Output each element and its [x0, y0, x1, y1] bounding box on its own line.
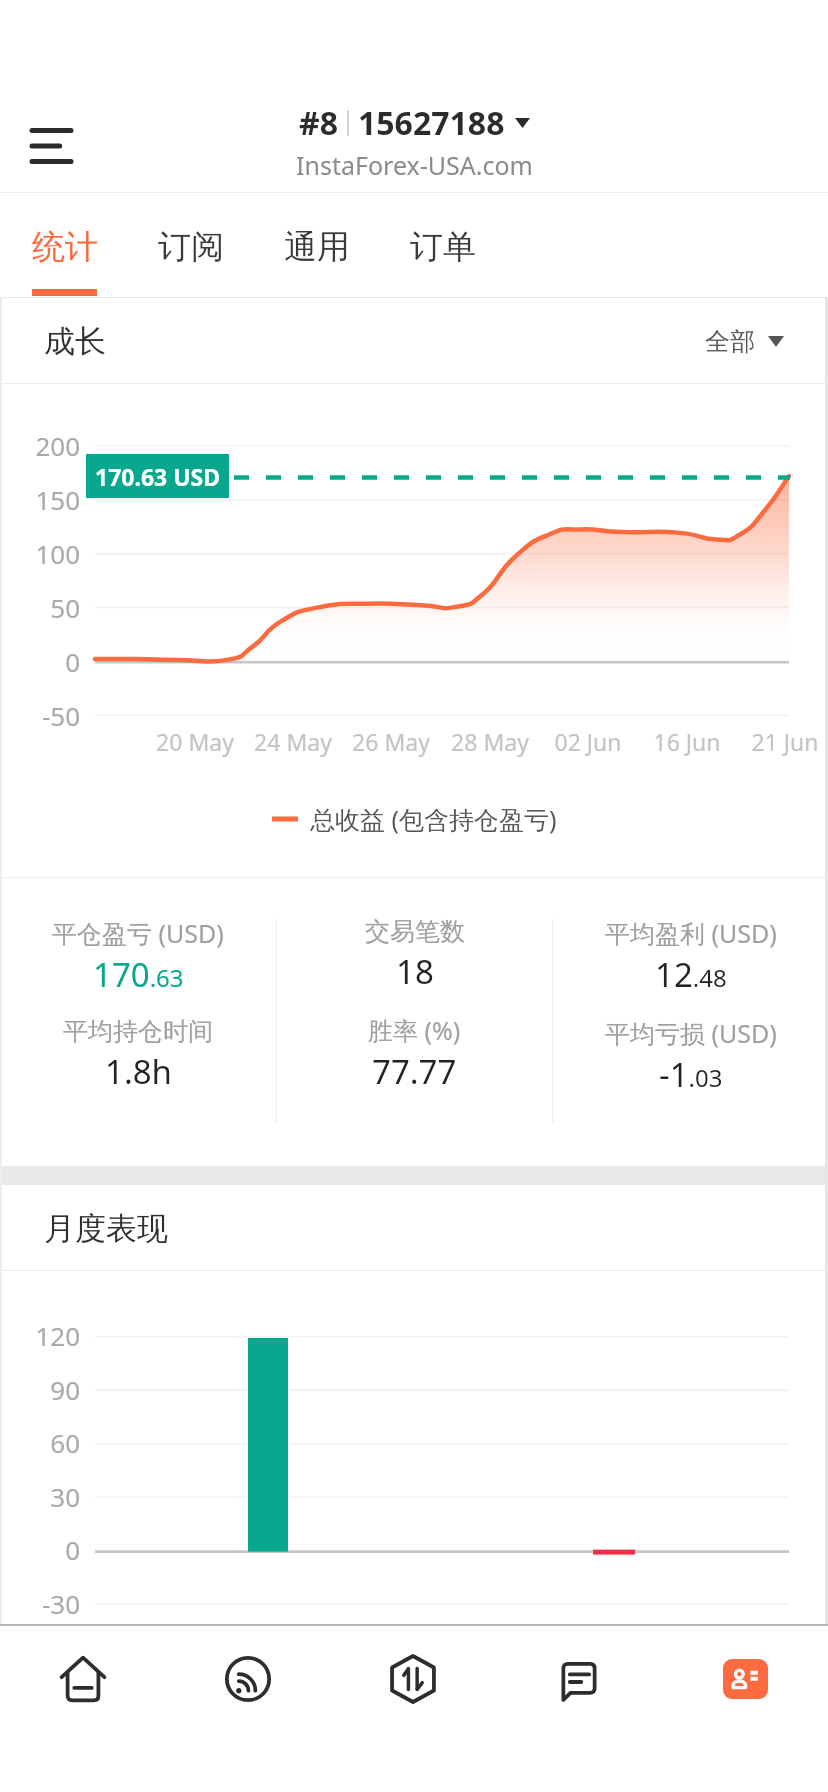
staticText: 统计 — [32, 226, 98, 268]
button[interactable]: Trade — [330, 1626, 496, 1792]
staticText: 0 — [0, 644, 80, 679]
staticText: 月度表现 — [44, 1209, 168, 1248]
staticText: 77.77 — [372, 1049, 457, 1094]
button[interactable]: 订单 — [378, 193, 504, 297]
staticText: 26 May — [321, 726, 461, 757]
staticText: 订阅 — [158, 226, 224, 268]
staticText: 02 Jun — [518, 726, 658, 757]
button[interactable]: 统计 — [0, 193, 126, 297]
staticText: 通用 — [284, 226, 350, 268]
staticText: 总收益 (包含持仓盈亏) — [310, 802, 557, 836]
staticText: 平均盈利 (USD) — [605, 916, 777, 950]
button[interactable]: Profile — [662, 1626, 828, 1792]
staticText: -50 — [0, 698, 80, 733]
staticText: 胜率 (%) — [368, 1013, 461, 1047]
staticText: 平仓盈亏 (USD) — [52, 916, 224, 950]
staticText: 0 — [0, 1532, 80, 1567]
staticText: 12.48 — [655, 952, 727, 997]
staticText: 100 — [0, 536, 80, 571]
staticText: 24 May — [223, 726, 363, 757]
staticText: 成长 — [44, 322, 106, 361]
staticText: -1.03 — [659, 1052, 723, 1097]
button[interactable]: 全部 — [705, 326, 784, 357]
staticText: 30 — [0, 1479, 80, 1514]
staticText: 200 — [0, 428, 80, 463]
staticText: 20 May — [125, 726, 265, 757]
button[interactable]: Menu — [14, 109, 88, 183]
staticText: 1.8h — [105, 1049, 172, 1094]
staticText: 订单 — [410, 226, 476, 268]
button[interactable]: 订阅 — [126, 193, 252, 297]
staticText: 18 — [396, 949, 434, 994]
staticText: -30 — [0, 1586, 80, 1621]
staticText: 21 Jun — [715, 726, 828, 757]
button[interactable]: Messages — [496, 1626, 662, 1792]
staticText: InstaForex-USA.com — [296, 148, 533, 182]
staticText: 28 May — [420, 726, 560, 757]
staticText: 交易笔数 — [365, 916, 465, 947]
staticText: #8 — [299, 101, 338, 145]
button[interactable]: 通用 — [252, 193, 378, 297]
button[interactable]: Signals — [165, 1626, 330, 1792]
staticText: 90 — [0, 1372, 80, 1407]
staticText: 平均亏损 (USD) — [605, 1016, 777, 1050]
staticText: 平均持仓时间 — [63, 1016, 213, 1047]
staticText: 16 Jun — [617, 726, 757, 757]
staticText: 150 — [0, 482, 80, 517]
button[interactable]: Home — [0, 1626, 165, 1792]
staticText: 全部 — [705, 326, 755, 357]
staticText: 170.63 — [93, 952, 184, 997]
staticText: 15627188 — [358, 101, 505, 145]
staticText: 60 — [0, 1425, 80, 1460]
staticText: 170.63 USD — [95, 461, 221, 492]
staticText: 50 — [0, 590, 80, 625]
staticText: 120 — [0, 1318, 80, 1353]
